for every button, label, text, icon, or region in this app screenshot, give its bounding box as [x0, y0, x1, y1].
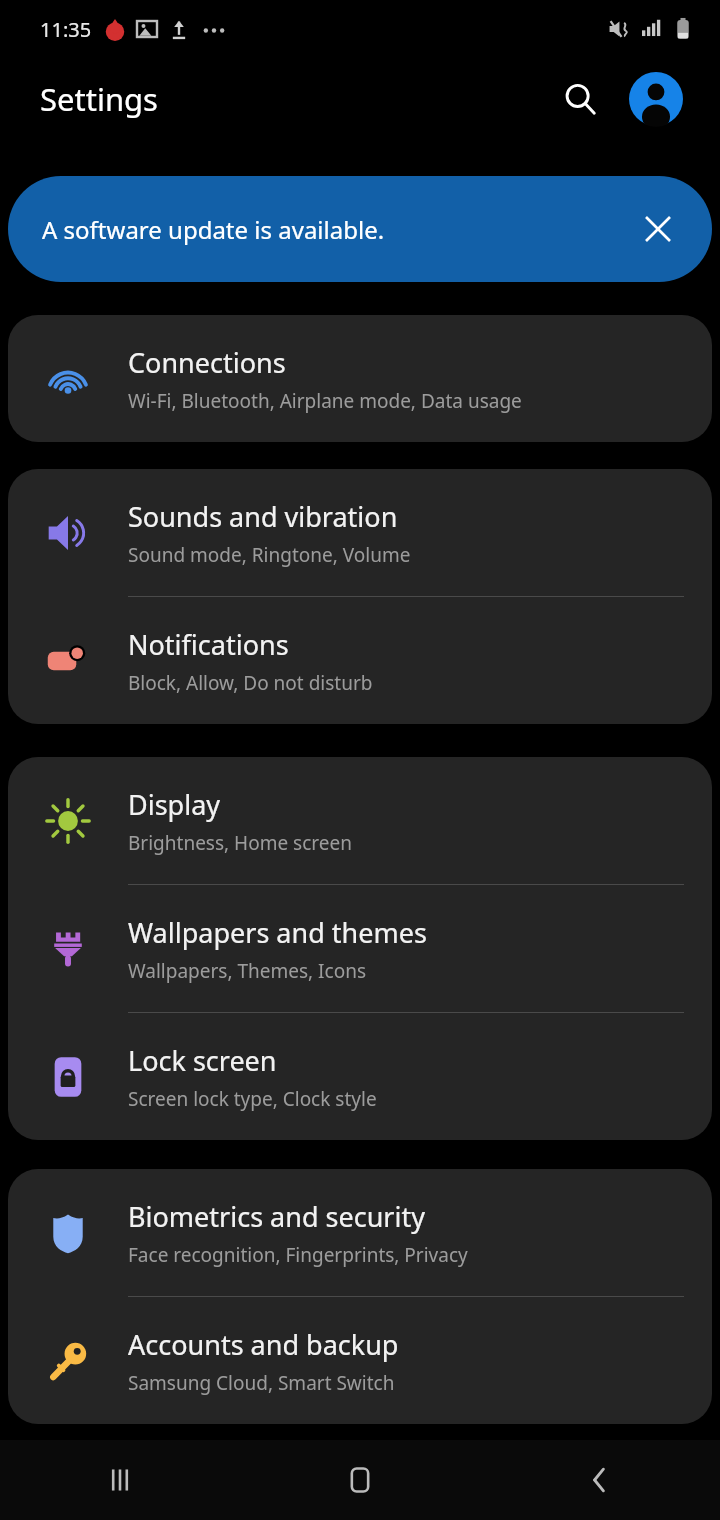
- staticText: Wallpapers and themes: [128, 914, 427, 951]
- staticText: Connections: [128, 344, 286, 381]
- button[interactable]: Connections: [8, 315, 712, 442]
- button[interactable]: Sounds and vibration: [8, 469, 712, 596]
- button[interactable]: Search: [552, 71, 608, 127]
- staticText: Lock screen: [128, 1042, 277, 1079]
- staticText: Settings: [40, 78, 158, 120]
- button[interactable]: Back: [480, 1440, 720, 1520]
- staticText: Wallpapers, Themes, Icons: [128, 958, 367, 984]
- button[interactable]: Home: [240, 1440, 480, 1520]
- button[interactable]: Dismiss: [630, 201, 686, 257]
- staticText: Sounds and vibration: [128, 498, 398, 535]
- staticText: Screen lock type, Clock style: [128, 1086, 377, 1112]
- button[interactable]: Accounts and backup: [8, 1297, 712, 1424]
- staticText: Wi-Fi, Bluetooth, Airplane mode, Data us…: [128, 388, 522, 414]
- staticText: Brightness, Home screen: [128, 830, 352, 856]
- button[interactable]: Account: [628, 71, 684, 127]
- staticText: Biometrics and security: [128, 1198, 425, 1235]
- staticText: Samsung Cloud, Smart Switch: [128, 1370, 395, 1396]
- button[interactable]: Lock screen: [8, 1013, 712, 1140]
- staticText: Accounts and backup: [128, 1326, 399, 1363]
- staticText: Block, Allow, Do not disturb: [128, 670, 373, 696]
- button[interactable]: Notifications: [8, 597, 712, 724]
- button[interactable]: A software update is available.: [8, 176, 712, 282]
- staticText: Sound mode, Ringtone, Volume: [128, 542, 411, 568]
- staticText: Face recognition, Fingerprints, Privacy: [128, 1242, 468, 1268]
- staticText: Display: [128, 786, 221, 823]
- button[interactable]: Biometrics and security: [8, 1169, 712, 1296]
- button[interactable]: Recents: [0, 1440, 240, 1520]
- button[interactable]: Display: [8, 757, 712, 884]
- button[interactable]: Wallpapers and themes: [8, 885, 712, 1012]
- staticText: 11:35: [40, 16, 92, 43]
- staticText: Notifications: [128, 626, 289, 663]
- staticText: A software update is available.: [42, 213, 630, 246]
